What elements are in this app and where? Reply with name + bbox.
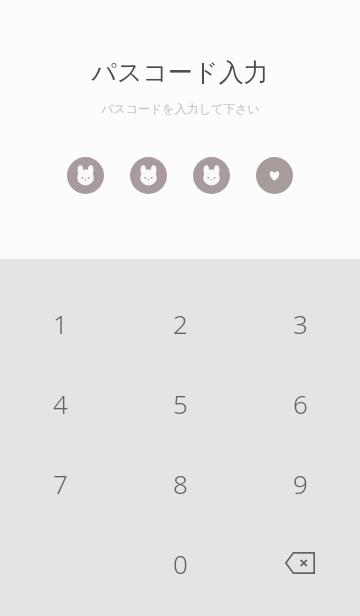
staticText: 8 [173,466,188,501]
staticText: 7 [53,466,68,501]
staticText: パスコード入力 [91,57,269,88]
button[interactable]: 2 [120,283,240,363]
staticText: 4 [53,386,68,421]
button[interactable]: 5 [120,363,240,443]
button[interactable]: 8 [120,443,240,523]
button[interactable]: 7 [0,443,120,523]
button[interactable]: 0 [120,523,240,603]
button[interactable]: 4 [0,363,120,443]
staticText: 5 [173,386,188,421]
button[interactable]: Delete [240,523,360,603]
staticText: 0 [173,546,188,581]
button[interactable]: 6 [240,363,360,443]
button[interactable]: 3 [240,283,360,363]
staticText: 3 [293,306,308,341]
staticText: 9 [293,466,308,501]
staticText: 6 [293,386,308,421]
button[interactable]: 1 [0,283,120,363]
button[interactable]: 9 [240,443,360,523]
staticText: 2 [173,306,188,341]
staticText: 1 [53,306,68,341]
staticText: パスコードを入力して下さい [101,101,260,116]
